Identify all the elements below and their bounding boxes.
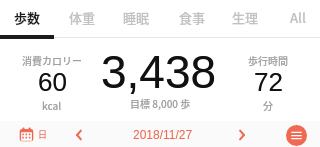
staticText: 歩数 <box>14 8 41 27</box>
staticText: 日 <box>38 128 48 141</box>
staticText: 消費カロリー <box>22 53 82 67</box>
staticText: 食事 <box>179 8 206 27</box>
staticText: 歩行時間 <box>248 53 288 67</box>
staticText: 60 <box>38 67 67 96</box>
staticText: 分 <box>263 98 273 112</box>
staticText: 体重 <box>69 8 96 27</box>
staticText: 3,438 <box>101 46 217 97</box>
staticText: 2018/11/27 <box>133 128 193 141</box>
button[interactable]: 歩数 <box>0 0 54 35</box>
staticText: 生理 <box>232 8 259 27</box>
button[interactable]: 食事 <box>165 0 219 35</box>
button[interactable]: Menu <box>286 125 307 146</box>
staticText: 睡眠 <box>123 8 150 27</box>
button[interactable]: 体重 <box>55 0 109 35</box>
button[interactable]: 生理 <box>218 0 272 35</box>
staticText: 目標 8,000 歩 <box>130 96 191 110</box>
staticText: 72 <box>254 67 283 96</box>
button[interactable]: All <box>271 0 320 35</box>
staticText: 3,438 <box>101 46 217 97</box>
staticText: 60 <box>38 67 67 96</box>
button[interactable]: 睡眠 <box>109 0 163 35</box>
button[interactable]: Next day <box>231 124 252 145</box>
staticText: 72 <box>254 67 283 96</box>
staticText: kcal <box>42 98 62 112</box>
button[interactable]: 2018/11/27 <box>128 124 198 145</box>
button[interactable]: Previous day <box>68 124 89 145</box>
staticText: All <box>290 8 306 27</box>
button[interactable]: 日 <box>19 124 48 144</box>
